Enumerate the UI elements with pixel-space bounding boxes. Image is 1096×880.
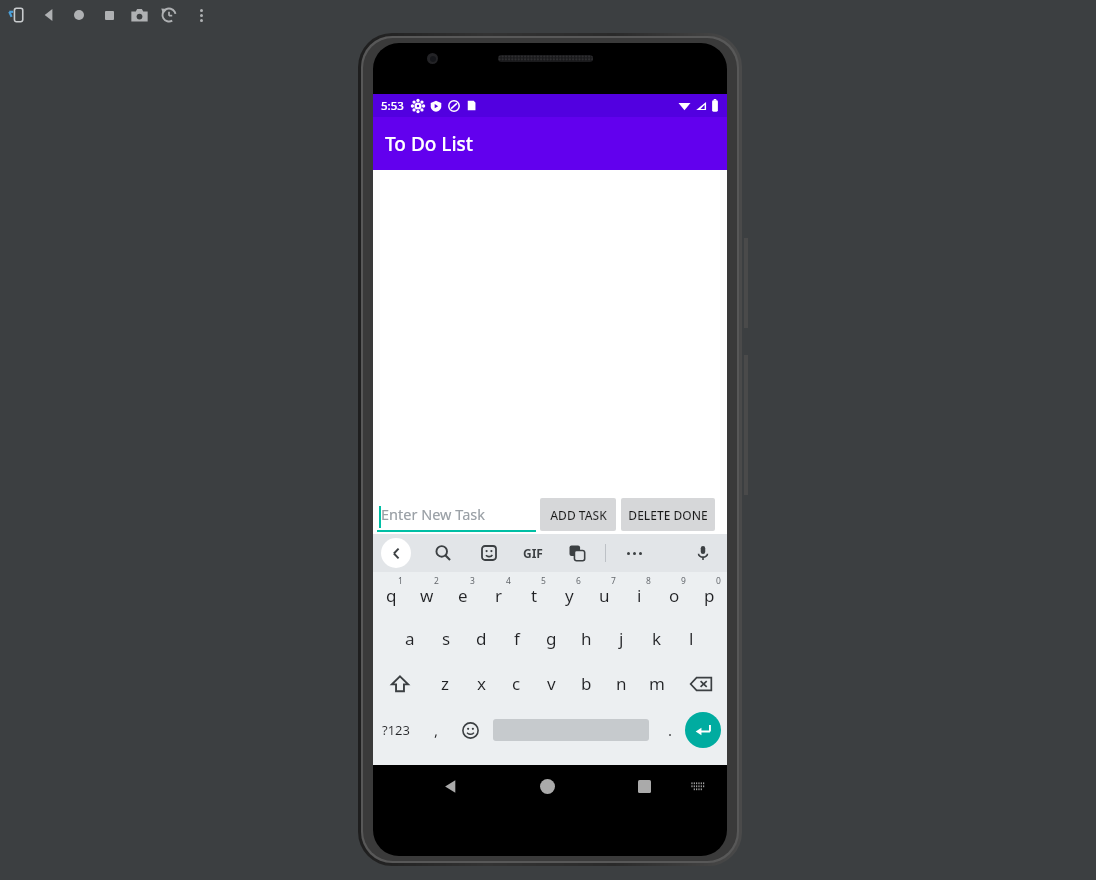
button[interactable]: Search (429, 539, 457, 567)
staticText: ADD TASK (550, 507, 607, 523)
button[interactable]: a (392, 616, 428, 661)
staticText: e (458, 584, 468, 607)
button[interactable]: Enter New Task (377, 496, 536, 532)
button[interactable]: Back (36, 2, 62, 28)
button[interactable]: ?123 (373, 706, 419, 754)
button[interactable]: o (657, 574, 692, 616)
staticText: 5:53 (381, 98, 404, 114)
button[interactable]: Screenshot (126, 2, 152, 28)
staticText: 6 (576, 575, 581, 587)
button[interactable]: More (188, 2, 214, 28)
staticText: m (649, 672, 665, 695)
staticText: j (619, 627, 624, 650)
staticText: t (531, 584, 538, 607)
button[interactable]: , (419, 706, 453, 754)
staticText: q (386, 584, 397, 607)
button[interactable]: t (517, 574, 552, 616)
button[interactable]: w (409, 574, 445, 616)
button[interactable]: m (639, 661, 674, 706)
staticText: DELETE DONE (628, 507, 708, 523)
staticText: h (581, 627, 592, 650)
button[interactable]: i (622, 574, 657, 616)
staticText: d (476, 627, 487, 650)
button[interactable]: More options (620, 539, 648, 567)
button[interactable]: q (373, 574, 409, 616)
button[interactable]: e (445, 574, 481, 616)
staticText: 7 (611, 575, 616, 587)
staticText: r (495, 584, 503, 607)
staticText: a (405, 627, 415, 650)
staticText: s (442, 627, 451, 650)
button[interactable]: g (534, 616, 569, 661)
button[interactable]: n (604, 661, 639, 706)
staticText: To Do List (385, 131, 474, 157)
staticText: 0 (716, 575, 721, 587)
button[interactable]: p (692, 574, 727, 616)
button[interactable]: Voice input (689, 539, 717, 567)
staticText: i (637, 584, 642, 607)
staticText: 5 (541, 575, 546, 587)
button[interactable]: u (587, 574, 622, 616)
button[interactable]: y (552, 574, 587, 616)
button[interactable]: Home (66, 2, 92, 28)
button[interactable]: Emoji (453, 706, 487, 754)
button[interactable]: Back (433, 769, 467, 803)
staticText: 8 (646, 575, 651, 587)
button[interactable]: Shift (373, 661, 427, 706)
staticText: . (668, 720, 673, 740)
staticText: f (514, 627, 520, 650)
button[interactable]: x (463, 661, 499, 706)
button[interactable]: GIF (523, 545, 543, 561)
staticText: o (669, 584, 680, 607)
button[interactable]: Power (4, 2, 30, 28)
staticText: v (547, 672, 556, 695)
staticText: , (434, 720, 439, 740)
button[interactable]: Recent apps (627, 769, 661, 803)
button[interactable]: b (569, 661, 604, 706)
button[interactable]: k (639, 616, 674, 661)
staticText: p (704, 584, 715, 607)
button[interactable]: z (427, 661, 463, 706)
staticText: n (616, 672, 627, 695)
staticText: 1 (398, 575, 403, 587)
button[interactable]: Switch keyboard (683, 771, 713, 801)
staticText: ?123 (382, 721, 410, 739)
button[interactable]: v (534, 661, 569, 706)
staticText: c (512, 672, 521, 695)
staticText: x (477, 672, 486, 695)
staticText: z (441, 672, 449, 695)
staticText: 3 (470, 575, 475, 587)
staticText: k (652, 627, 662, 650)
staticText: g (546, 627, 557, 650)
staticText: 2 (434, 575, 439, 587)
button[interactable]: r (481, 574, 517, 616)
button[interactable]: Stickers (475, 539, 503, 567)
staticText: l (689, 627, 694, 650)
staticText: b (581, 672, 592, 695)
button[interactable]: s (428, 616, 464, 661)
button[interactable]: Backspace (674, 661, 727, 706)
staticText: w (420, 584, 434, 607)
button[interactable]: Overview (96, 2, 122, 28)
staticText: y (565, 584, 574, 607)
button[interactable]: c (499, 661, 534, 706)
button[interactable]: Close keyboard suggestions (381, 538, 411, 568)
staticText: Enter New Task (381, 504, 485, 524)
button[interactable]: h (569, 616, 604, 661)
button[interactable]: d (464, 616, 499, 661)
button[interactable]: ADD TASK (540, 498, 616, 531)
button[interactable]: l (674, 616, 709, 661)
button[interactable]: j (604, 616, 639, 661)
button[interactable]: Translate (563, 539, 591, 567)
staticText: 9 (681, 575, 686, 587)
staticText: u (599, 584, 610, 607)
staticText: 4 (506, 575, 511, 587)
button[interactable]: . (655, 706, 685, 754)
button[interactable]: Home (530, 769, 564, 803)
button[interactable]: Enter (685, 712, 721, 748)
button[interactable]: Rotate (156, 2, 182, 28)
button[interactable]: DELETE DONE (621, 498, 715, 531)
button[interactable]: f (499, 616, 534, 661)
